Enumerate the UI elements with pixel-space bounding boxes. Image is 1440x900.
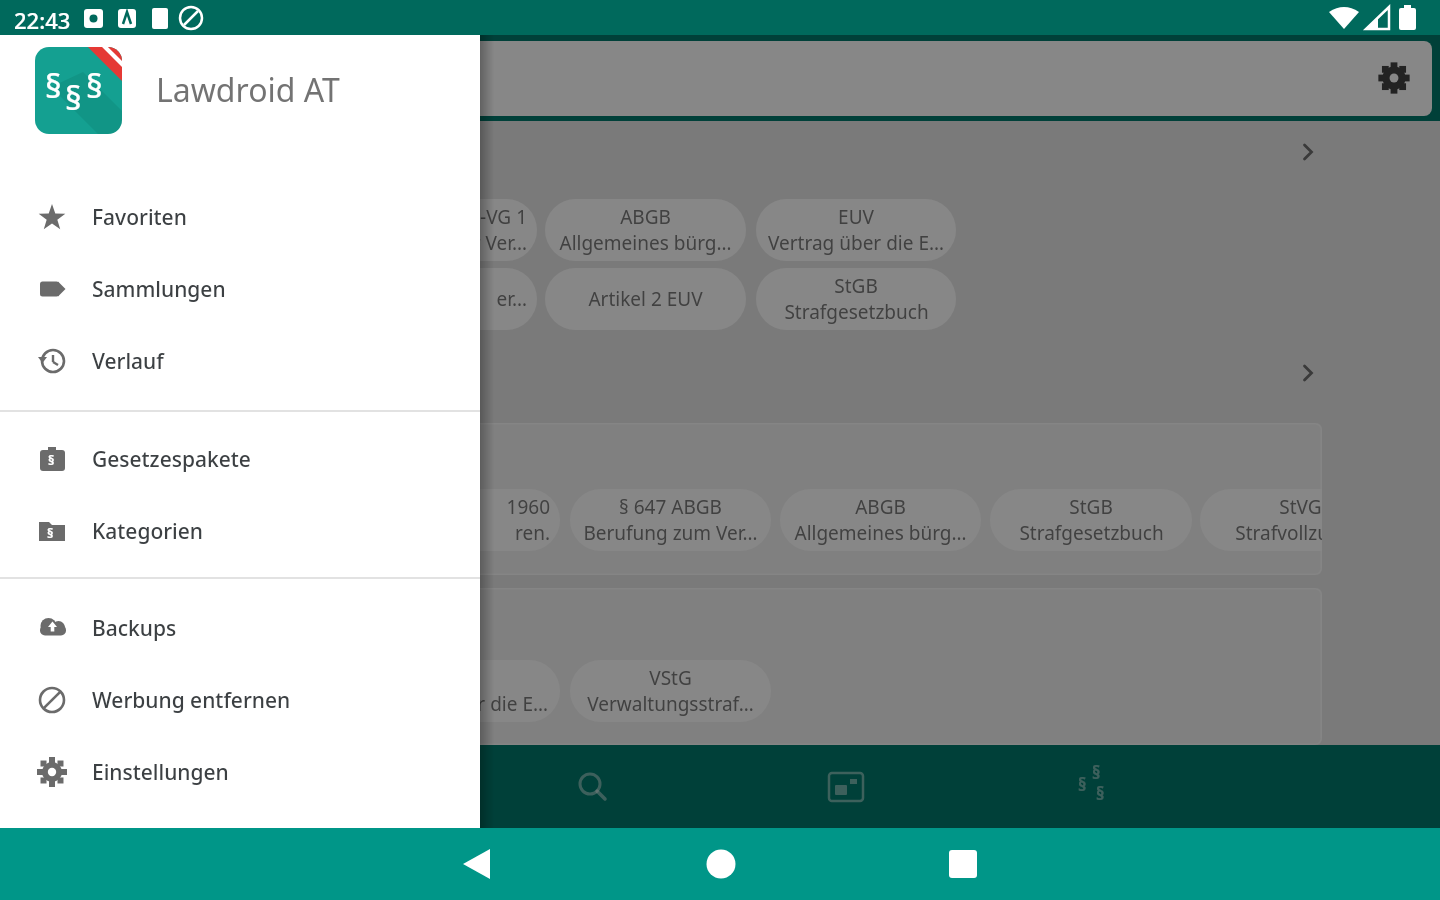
- staticText: Lawdroid AT: [156, 68, 340, 112]
- button[interactable]: EUV: [360, 660, 560, 722]
- staticText: Backups: [92, 614, 177, 643]
- staticText: Allgemeines bürg…: [794, 520, 967, 546]
- staticText: Berufung zum Ver…: [583, 520, 758, 546]
- staticText: Vertrag über die E…: [372, 691, 548, 717]
- button[interactable]: [480, 828, 960, 900]
- button[interactable]: § 647 ABGB: [570, 489, 771, 551]
- button[interactable]: Favoriten: [0, 181, 480, 253]
- staticText: VStG: [649, 665, 692, 691]
- staticText: Verlauf: [92, 347, 164, 376]
- staticText: Artikel 2 EUV: [588, 286, 703, 312]
- staticText: Favoriten: [92, 203, 187, 232]
- staticText: §: [45, 63, 62, 108]
- button[interactable]: ABGB: [780, 489, 981, 551]
- staticText: StGB: [1069, 494, 1113, 520]
- staticText: Strafvollzugs…: [1235, 520, 1322, 546]
- staticText: §: [1078, 773, 1087, 796]
- button[interactable]: [1080, 745, 1440, 828]
- button[interactable]: [0, 745, 360, 828]
- staticText: StGB: [834, 273, 878, 299]
- staticText: er…: [496, 286, 527, 312]
- staticText: Kategorien: [92, 517, 204, 546]
- staticText: Vertrag über die E…: [768, 230, 944, 256]
- button[interactable]: Sammlungen: [0, 253, 480, 325]
- staticText: Gesetzespakete: [92, 445, 251, 474]
- staticText: §: [47, 524, 54, 542]
- staticText: Allgemeines bürg…: [559, 230, 732, 256]
- button[interactable]: EUV: [756, 199, 956, 261]
- button[interactable]: §: [0, 495, 480, 567]
- button[interactable]: §: [0, 423, 480, 495]
- button[interactable]: Verlauf: [0, 325, 480, 397]
- button[interactable]: [360, 745, 720, 828]
- button[interactable]: StVG: [1200, 489, 1322, 551]
- button[interactable]: Einstellungen: [0, 736, 480, 808]
- button[interactable]: Backups: [0, 592, 480, 664]
- staticText: EUV: [838, 204, 874, 230]
- staticText: ren.: [514, 520, 550, 546]
- button[interactable]: B-VG 1: [337, 199, 537, 261]
- button[interactable]: er…: [337, 268, 537, 330]
- staticText: StVG: [1279, 494, 1322, 520]
- staticText: §: [1092, 761, 1101, 784]
- button[interactable]: StGB: [756, 268, 956, 330]
- button[interactable]: StGB: [990, 489, 1192, 551]
- staticText: §: [86, 63, 103, 108]
- button[interactable]: 1960: [360, 489, 560, 551]
- staticText: ABGB: [855, 494, 906, 520]
- button[interactable]: Artikel 2 EUV: [545, 268, 746, 330]
- button[interactable]: [720, 745, 1080, 828]
- staticText: Sammlungen: [92, 275, 226, 304]
- staticText: 22:43: [14, 5, 71, 35]
- staticText: Strafgesetzbuch: [1019, 520, 1164, 546]
- staticText: ABGB: [620, 204, 671, 230]
- staticText: B-VG 1: [467, 204, 527, 230]
- button[interactable]: [960, 828, 1440, 900]
- button[interactable]: VStG: [570, 660, 771, 722]
- staticText: Strafgesetzbuch: [784, 299, 929, 325]
- button[interactable]: ABGB: [545, 199, 746, 261]
- staticText: § 647 ABGB: [619, 494, 722, 520]
- staticText: §: [65, 75, 82, 120]
- staticText: §: [48, 451, 55, 469]
- staticText: §: [1096, 782, 1105, 805]
- button[interactable]: [8, 41, 1432, 116]
- staticText: der Ver…: [450, 230, 527, 256]
- button[interactable]: [0, 828, 480, 900]
- staticText: Verwaltungsstraf…: [587, 691, 754, 717]
- staticText: Werbung entfernen: [92, 686, 291, 715]
- button[interactable]: Werbung entfernen: [0, 664, 480, 736]
- staticText: 1960: [506, 494, 550, 520]
- staticText: Einstellungen: [92, 758, 229, 787]
